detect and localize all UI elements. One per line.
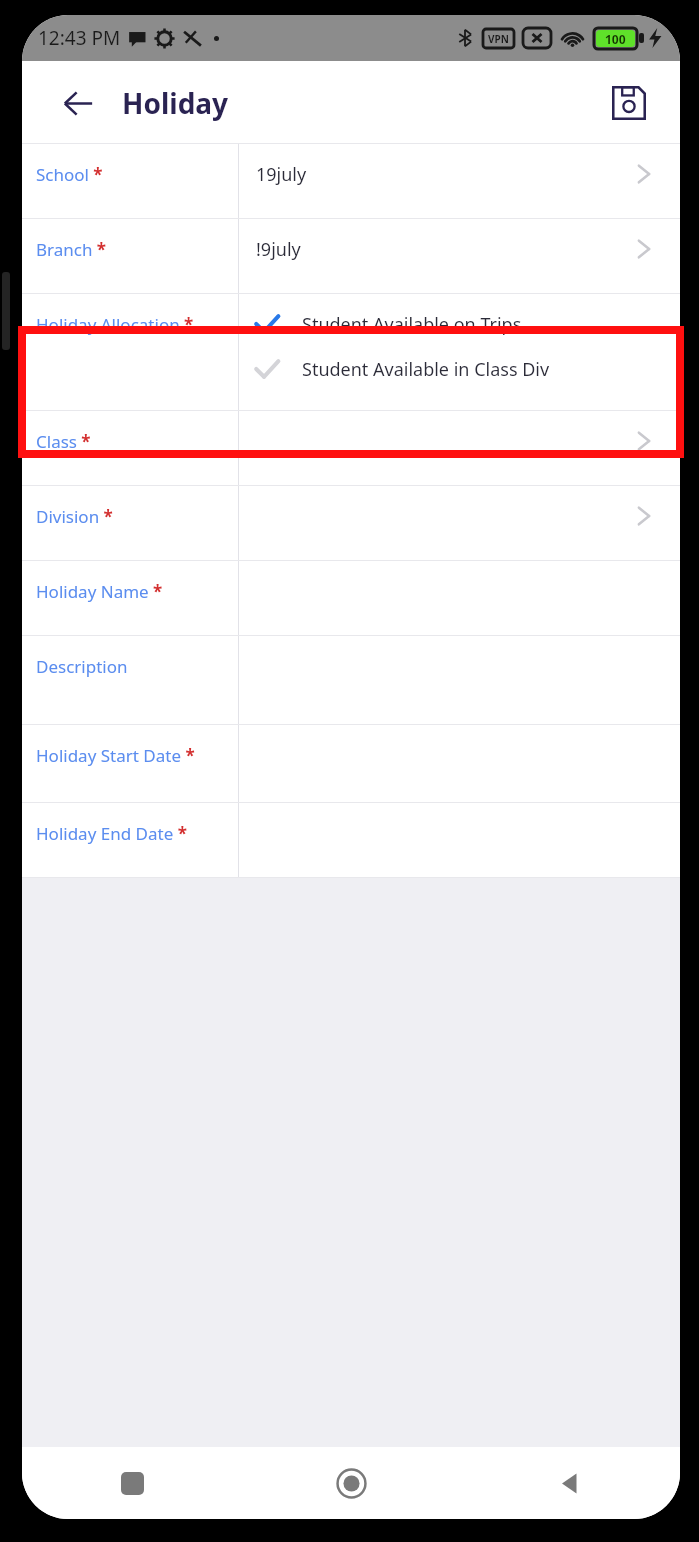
staticText: VPN (488, 32, 509, 46)
button[interactable]: Holiday End Date * (22, 803, 680, 878)
staticText: Student Available in Class Div (302, 357, 550, 382)
button[interactable]: School * (22, 144, 680, 219)
button[interactable]: Division * (22, 486, 680, 561)
button[interactable]: Student Available in Class Div (238, 351, 680, 387)
staticText: Holiday End Date * (36, 822, 187, 845)
button[interactable]: Holiday Name * (22, 561, 680, 636)
staticText: Class * (36, 430, 91, 453)
staticText: Branch * (36, 238, 107, 261)
button[interactable]: Back (461, 1447, 680, 1519)
staticText: 19july (256, 162, 307, 187)
button[interactable]: Holiday Start Date * (22, 725, 680, 803)
button[interactable]: Description (22, 636, 680, 725)
staticText: School * (36, 163, 103, 186)
staticText: Student Available on Trips (302, 312, 522, 337)
staticText: Holiday (122, 84, 229, 122)
button[interactable]: Branch * (22, 219, 680, 294)
button[interactable]: Student Available on Trips (238, 306, 680, 342)
staticText: Division * (36, 505, 113, 528)
staticText: 100 (605, 31, 626, 47)
staticText: !9july (256, 237, 301, 262)
staticText: Holiday Start Date * (36, 744, 195, 767)
staticText: Holiday Name * (36, 580, 163, 603)
staticText: Holiday Allocation * (36, 313, 194, 336)
staticText: 12:43 PM (38, 25, 121, 51)
button[interactable]: Home (242, 1447, 461, 1519)
button[interactable]: Save (604, 78, 654, 128)
button[interactable]: Back (54, 79, 102, 127)
staticText: Description (36, 655, 128, 678)
button[interactable]: Class * (22, 411, 680, 486)
button[interactable]: Recent apps (22, 1447, 242, 1519)
